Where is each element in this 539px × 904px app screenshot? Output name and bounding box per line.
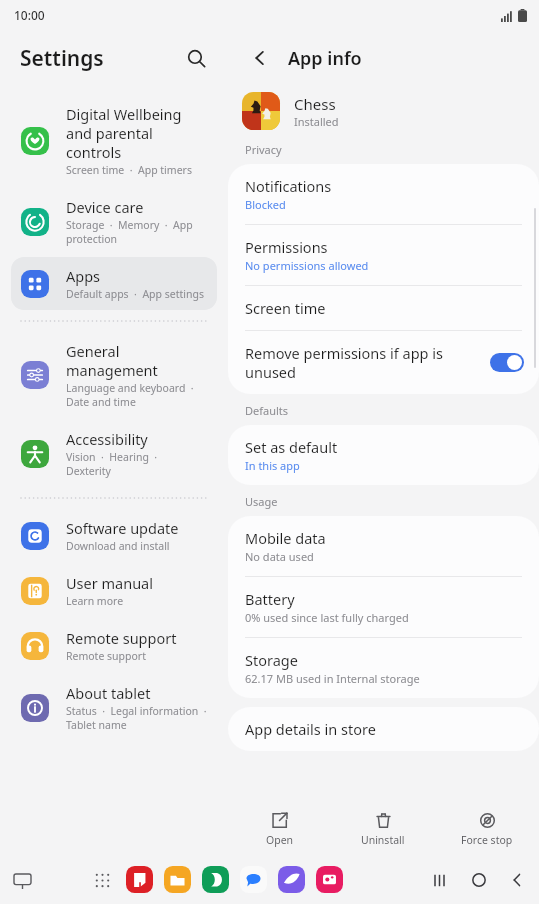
button[interactable]: Uninstall	[331, 803, 435, 855]
button[interactable]: Permissions	[228, 225, 539, 285]
button[interactable]: Open	[228, 803, 331, 855]
staticText: 10:00	[14, 7, 45, 23]
staticText: In this app	[245, 458, 300, 473]
staticText: Screen time	[245, 298, 326, 318]
button[interactable]: Digital Wellbeing and parental controls	[11, 95, 217, 186]
button[interactable]: Search	[176, 38, 216, 78]
staticText: Usage	[245, 494, 278, 509]
staticText: About tablet	[66, 683, 151, 703]
button[interactable]: Battery	[228, 577, 539, 637]
button[interactable]: App 2	[201, 865, 230, 894]
button[interactable]: General management	[11, 332, 217, 418]
button[interactable]: App 5	[315, 865, 344, 894]
staticText: Installed	[294, 114, 339, 129]
staticText: Remote support	[66, 628, 177, 648]
button[interactable]: App 4	[277, 865, 306, 894]
staticText: No data used	[245, 549, 314, 564]
staticText: Screen time · App timers	[66, 163, 192, 177]
button[interactable]: Home	[459, 860, 499, 900]
button[interactable]: Force stop	[435, 803, 539, 855]
button[interactable]: Notifications	[228, 164, 539, 224]
button[interactable]: Back	[240, 38, 280, 78]
staticText: Digital Wellbeing and parental controls	[66, 104, 182, 162]
staticText: Defaults	[245, 403, 289, 418]
button[interactable]: Recents	[419, 860, 459, 900]
staticText: Chess	[294, 94, 336, 114]
button[interactable]: Accessibility	[11, 420, 217, 487]
button[interactable]: Device care	[11, 188, 217, 255]
staticText: Status · Legal information · Tablet name	[66, 704, 207, 732]
button[interactable]: User manual	[11, 564, 217, 617]
button[interactable]: Toggle remove permissions	[490, 353, 524, 372]
staticText: Software update	[66, 518, 179, 538]
button[interactable]: App 3	[239, 865, 268, 894]
staticText: 62.17 MB used in Internal storage	[245, 671, 420, 686]
staticText: No permissions allowed	[245, 258, 369, 273]
staticText: Language and keyboard · Date and time	[66, 381, 194, 409]
button[interactable]: App details in store	[228, 707, 539, 751]
button[interactable]: App 0	[125, 865, 154, 894]
button[interactable]: About tablet	[11, 674, 217, 741]
button[interactable]: App 1	[163, 865, 192, 894]
staticText: App info	[288, 46, 362, 71]
staticText: User manual	[66, 573, 153, 593]
button[interactable]: Back	[499, 860, 535, 900]
button[interactable]: Storage	[228, 638, 539, 698]
staticText: Vision · Hearing · Dexterity	[66, 450, 158, 478]
staticText: Device care	[66, 197, 144, 217]
button[interactable]: Apps	[11, 257, 217, 310]
button[interactable]: Mobile data	[228, 516, 539, 576]
staticText: Force stop	[461, 833, 513, 847]
button[interactable]: Recent apps tray	[6, 864, 38, 896]
button[interactable]: Remove permissions if app is unused	[228, 331, 539, 394]
staticText: Mobile data	[245, 528, 326, 548]
staticText: Accessibility	[66, 429, 148, 449]
staticText: Open	[266, 833, 294, 847]
staticText: Settings	[20, 44, 104, 73]
staticText: Storage	[245, 650, 298, 670]
button[interactable]: Software update	[11, 509, 217, 562]
button[interactable]: Remote support	[11, 619, 217, 672]
staticText: App details in store	[245, 719, 376, 739]
staticText: Privacy	[245, 142, 282, 157]
staticText: Apps	[66, 266, 101, 286]
staticText: General management	[66, 341, 158, 380]
staticText: Remove permissions if app is unused	[245, 343, 482, 382]
staticText: Blocked	[245, 197, 286, 212]
staticText: Storage · Memory · App protection	[66, 218, 193, 246]
staticText: Uninstall	[361, 833, 405, 847]
staticText: Remote support	[66, 649, 146, 663]
staticText: Default apps · App settings	[66, 287, 204, 301]
button[interactable]: Screen time	[228, 286, 539, 330]
staticText: Download and install	[66, 539, 170, 553]
staticText: Learn more	[66, 594, 124, 608]
button[interactable]: All apps	[86, 864, 118, 896]
button[interactable]: Set as default	[228, 425, 539, 485]
staticText: 0% used since last fully charged	[245, 610, 409, 625]
staticText: Battery	[245, 589, 295, 609]
staticText: Permissions	[245, 237, 328, 257]
staticText: Set as default	[245, 437, 338, 457]
staticText: Notifications	[245, 176, 332, 196]
